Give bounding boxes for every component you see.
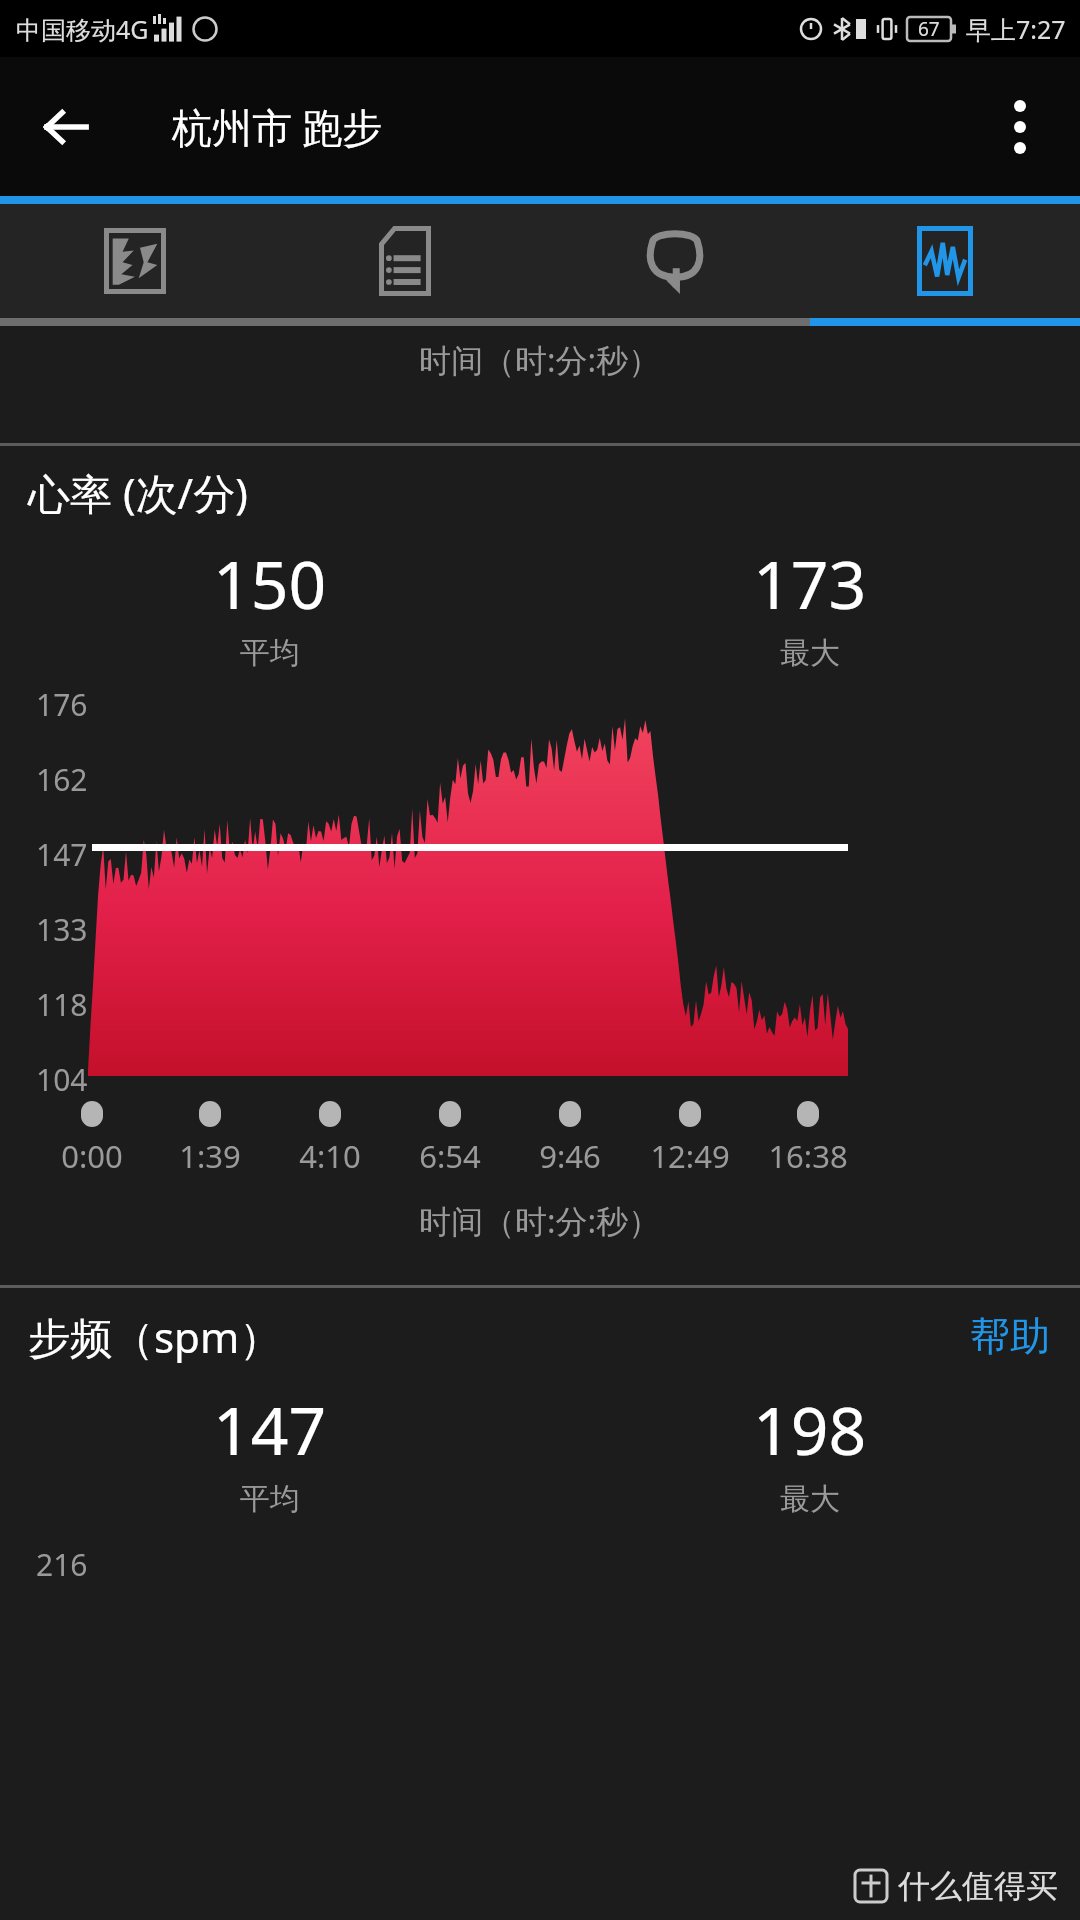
staticText: 最大 <box>780 634 840 672</box>
staticText: 118 <box>36 984 88 1025</box>
staticText: 9:46 <box>510 1135 630 1177</box>
button[interactable]: Details <box>270 204 540 318</box>
staticText: 心率 (次/分) <box>28 464 248 521</box>
staticText: 中国移动4G <box>16 12 149 46</box>
staticText: 时间（时:分:秒） <box>419 338 661 382</box>
staticText: 147 <box>213 1384 327 1474</box>
staticText: 0:00 <box>32 1135 152 1177</box>
staticText: 12:49 <box>630 1135 750 1177</box>
staticText: 早上7:27 <box>966 12 1066 46</box>
button[interactable]: Back <box>30 91 102 163</box>
staticText: 什么值得买 <box>898 1866 1058 1906</box>
staticText: 6:54 <box>390 1135 510 1177</box>
staticText: 150 <box>213 538 327 628</box>
staticText: 16:38 <box>748 1135 868 1177</box>
button[interactable]: Laps <box>540 204 810 318</box>
staticText: 4:10 <box>270 1135 390 1177</box>
staticText: 133 <box>36 909 88 950</box>
staticText: 173 <box>753 538 867 628</box>
staticText: 杭州市 跑步 <box>172 99 383 154</box>
staticText: 104 <box>36 1059 88 1100</box>
staticText: 216 <box>36 1544 88 1585</box>
staticText: 1:39 <box>150 1135 270 1177</box>
staticText: 平均 <box>240 634 300 672</box>
staticText: 时间（时:分:秒） <box>419 1199 661 1243</box>
staticText: 帮助 <box>970 1311 1050 1361</box>
staticText: 步频（spm） <box>28 1308 282 1365</box>
button[interactable]: 帮助 <box>962 1303 1058 1369</box>
staticText: 176 <box>36 684 88 725</box>
staticText: 162 <box>36 759 88 800</box>
staticText: 67 <box>918 16 940 42</box>
button[interactable]: More options <box>980 87 1060 167</box>
staticText: 198 <box>753 1384 867 1474</box>
button[interactable]: Charts <box>810 204 1080 318</box>
staticText: 147 <box>36 834 88 875</box>
staticText: 平均 <box>240 1480 300 1518</box>
staticText: 最大 <box>780 1480 840 1518</box>
button[interactable]: Map <box>0 204 270 318</box>
